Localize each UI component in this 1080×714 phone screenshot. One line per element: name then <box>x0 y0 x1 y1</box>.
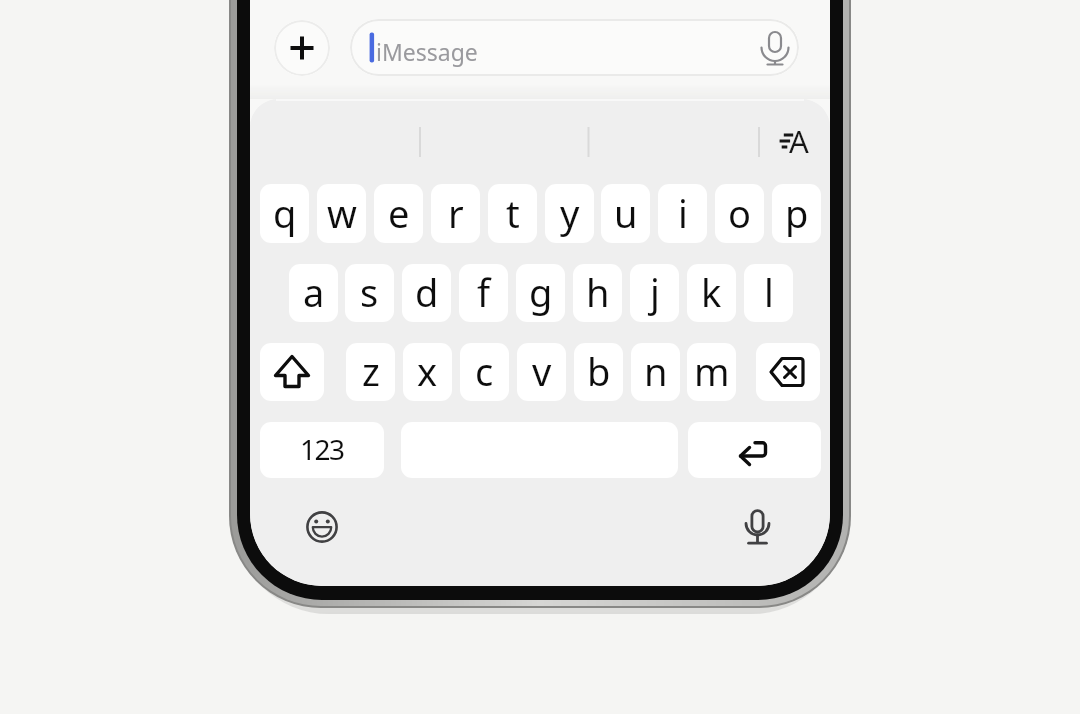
staticText: k <box>701 266 722 318</box>
button[interactable]: q <box>260 184 309 243</box>
staticText: 123 <box>300 430 344 468</box>
button[interactable]: n <box>631 343 680 401</box>
staticText: z <box>362 345 380 397</box>
button[interactable]: 123 <box>260 422 384 478</box>
staticText: a <box>303 266 325 318</box>
button[interactable]: t <box>488 184 537 243</box>
staticText: i <box>678 187 688 239</box>
button[interactable]: o <box>715 184 764 243</box>
staticText: q <box>273 187 297 239</box>
button[interactable] <box>756 343 820 401</box>
staticText: j <box>650 266 660 318</box>
button[interactable]: z <box>346 343 395 401</box>
button[interactable]: g <box>516 264 565 322</box>
button[interactable] <box>274 20 330 76</box>
button[interactable]: j <box>630 264 679 322</box>
staticText: n <box>644 345 668 397</box>
staticText: b <box>587 345 611 397</box>
button[interactable]: u <box>601 184 650 243</box>
staticText: p <box>785 187 809 239</box>
button[interactable]: l <box>744 264 793 322</box>
button[interactable] <box>737 507 777 547</box>
button[interactable]: h <box>573 264 622 322</box>
staticText: d <box>415 266 439 318</box>
staticText: c <box>475 345 494 397</box>
button[interactable]: v <box>517 343 566 401</box>
staticText: t <box>506 187 520 239</box>
staticText: g <box>529 266 553 318</box>
button[interactable]: a <box>289 264 338 322</box>
staticText: m <box>694 345 730 397</box>
button[interactable]: x <box>403 343 452 401</box>
button[interactable]: m <box>687 343 736 401</box>
button[interactable]: A <box>789 120 809 162</box>
staticText: o <box>728 187 751 239</box>
staticText: y <box>560 187 580 239</box>
staticText: l <box>764 266 774 318</box>
button[interactable]: r <box>431 184 480 243</box>
button[interactable]: i <box>658 184 707 243</box>
staticText: u <box>614 187 638 239</box>
button[interactable]: f <box>459 264 508 322</box>
button[interactable]: y <box>545 184 594 243</box>
staticText: s <box>360 266 379 318</box>
button[interactable]: e <box>374 184 423 243</box>
button[interactable] <box>688 422 821 478</box>
button[interactable] <box>350 19 799 76</box>
button[interactable]: c <box>460 343 509 401</box>
staticText: x <box>417 345 438 397</box>
staticText: r <box>448 187 464 239</box>
button[interactable] <box>302 507 342 547</box>
button[interactable]: p <box>772 184 821 243</box>
button[interactable]: d <box>402 264 451 322</box>
staticText: h <box>586 266 610 318</box>
staticText: f <box>477 266 491 318</box>
staticText: w <box>327 187 357 239</box>
staticText: iMessage <box>376 36 478 67</box>
staticText: v <box>532 345 552 397</box>
button[interactable]: b <box>574 343 623 401</box>
button[interactable]: w <box>317 184 366 243</box>
button[interactable] <box>260 343 324 401</box>
staticText: e <box>388 187 410 239</box>
button[interactable]: s <box>345 264 394 322</box>
button[interactable]: k <box>687 264 736 322</box>
